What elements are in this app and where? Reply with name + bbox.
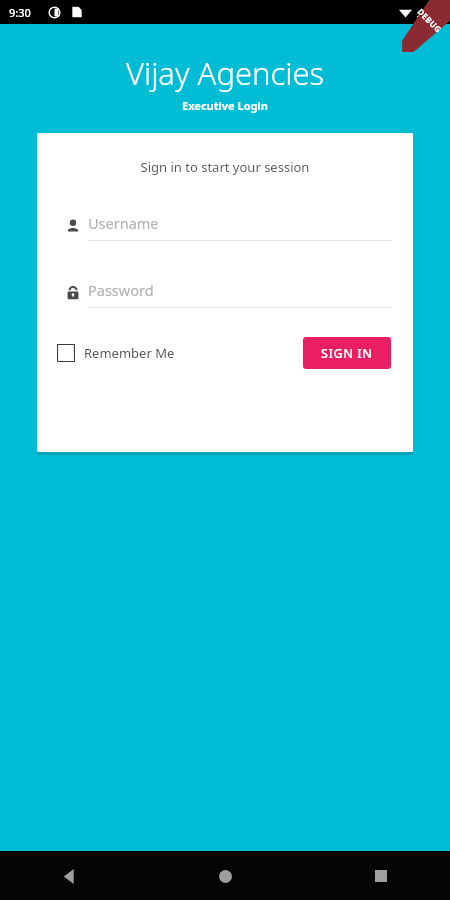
other: Username <box>65 218 81 234</box>
button[interactable]: Password <box>58 280 392 308</box>
staticText: Vijay Agencies <box>0 52 450 94</box>
staticText: Executive Login <box>0 98 450 113</box>
staticText: 9:30 <box>9 5 31 20</box>
button[interactable]: Remember Me <box>57 344 175 362</box>
staticText: Password <box>88 280 154 300</box>
button[interactable]: Home <box>208 859 242 893</box>
staticText: Remember Me <box>84 344 175 362</box>
button[interactable]: SIGN IN <box>303 337 391 369</box>
other: Password <box>65 285 81 301</box>
staticText: Username <box>88 213 159 233</box>
button[interactable]: Recent apps <box>364 859 398 893</box>
staticText: Sign in to start your session <box>37 158 413 176</box>
staticText: DEBUG <box>415 6 444 35</box>
staticText: SIGN IN <box>321 345 373 362</box>
button[interactable]: Back <box>52 859 86 893</box>
button[interactable]: Username <box>58 213 392 241</box>
